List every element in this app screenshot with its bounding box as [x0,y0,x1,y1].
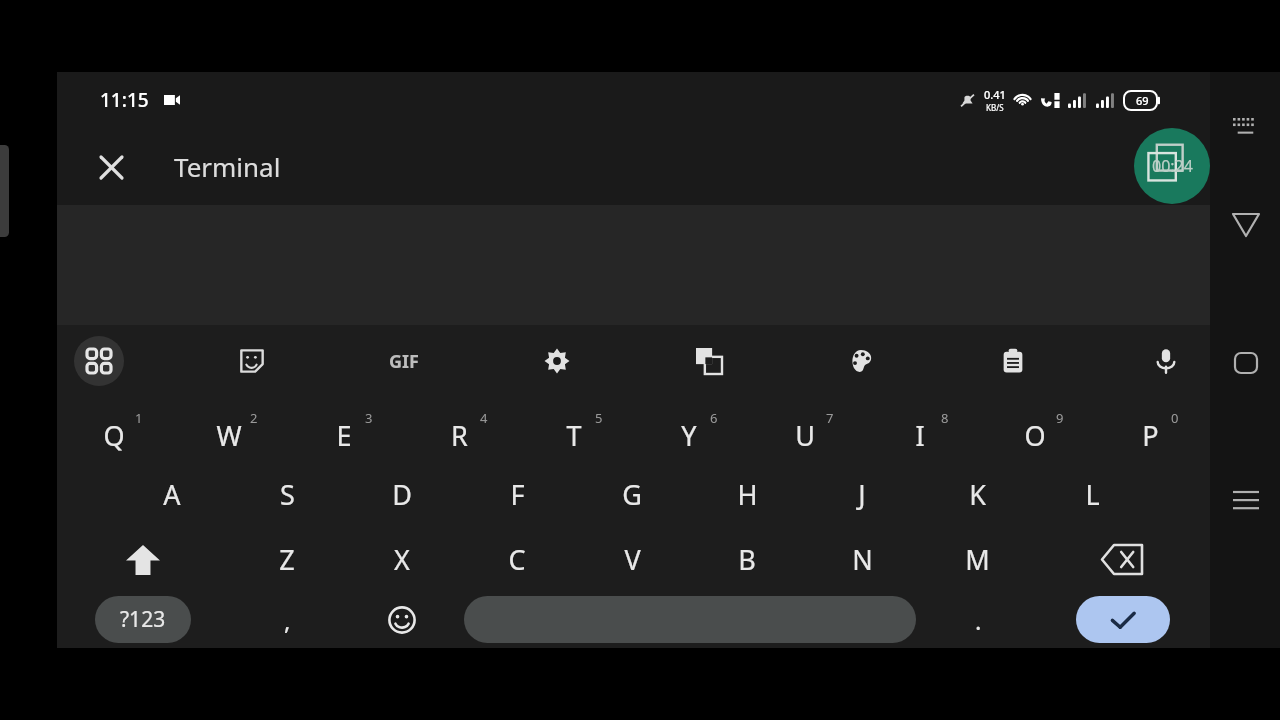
staticText: O [1024,417,1046,454]
button[interactable]: B [690,527,804,592]
button[interactable]: R [402,397,516,462]
staticText: M [965,541,990,578]
staticText: T [566,417,582,454]
staticText: 4 [480,409,488,427]
button[interactable]: Translate [684,336,734,386]
button[interactable]: Stickers [227,336,277,386]
staticText: K [969,476,986,513]
button[interactable]: Space [464,596,916,643]
button[interactable]: , [247,592,327,648]
staticText: S [280,476,295,513]
button[interactable]: I [863,397,977,462]
staticText: J [858,476,866,513]
staticText: 5 [595,409,603,427]
staticText: A [163,476,181,513]
button[interactable]: W [172,397,286,462]
button[interactable]: Z [230,527,344,592]
button[interactable]: H [690,462,804,527]
button[interactable]: T [517,397,631,462]
button[interactable]: J [805,462,919,527]
staticText: W [216,417,242,454]
button[interactable]: C [460,527,574,592]
staticText: 9 [1056,409,1064,427]
button[interactable]: P [1093,397,1207,462]
button[interactable]: Y [632,397,746,462]
button[interactable]: Hide keyboard [1220,100,1272,152]
button[interactable]: Recents [1220,475,1272,527]
staticText: B [738,541,756,578]
staticText: F [510,476,525,513]
staticText: 8 [941,409,949,427]
button[interactable]: Enter [1076,596,1170,643]
staticText: 1 [135,409,143,427]
button[interactable]: Backspace [1065,527,1179,592]
staticText: 6 [710,409,718,427]
button[interactable]: F [460,462,574,527]
staticText: V [624,541,641,578]
button[interactable]: Clipboard [988,336,1038,386]
staticText: U [795,417,815,454]
button[interactable]: E [287,397,401,462]
staticText: Y [681,417,697,454]
button[interactable]: ?123 [95,596,191,643]
staticText: GIF [389,349,419,374]
button[interactable]: V [575,527,689,592]
button[interactable]: Shift [86,527,200,592]
button[interactable]: Keyboard apps [74,336,124,386]
staticText: 3 [365,409,373,427]
button[interactable]: U [748,397,862,462]
staticText: 11:15 [100,87,149,113]
button[interactable]: Home [1220,337,1272,389]
button[interactable]: X [345,527,459,592]
staticText: L [1085,476,1100,513]
button[interactable]: D [345,462,459,527]
button[interactable]: N [805,527,919,592]
staticText: X [394,541,410,578]
staticText: D [392,476,412,513]
staticText: P [1142,417,1159,454]
staticText: N [852,541,873,578]
button[interactable]: L [1035,462,1149,527]
staticText: 7 [826,409,834,427]
staticText: , [284,604,291,637]
staticText: H [737,476,758,513]
button[interactable]: A [115,462,229,527]
button[interactable]: G [575,462,689,527]
button[interactable]: GIF [379,336,429,386]
staticText: G [622,476,642,513]
staticText: Terminal [174,149,281,184]
staticText: . [975,604,982,637]
button[interactable]: O [978,397,1092,462]
staticText: 69 [1136,93,1149,108]
button[interactable]: M [920,527,1034,592]
button[interactable]: Q [57,397,171,462]
staticText: ?123 [120,605,166,634]
staticText: 0 [1171,409,1179,427]
button[interactable]: Emoji [362,592,442,648]
button[interactable]: Theme [836,336,886,386]
staticText: 0.41 [984,87,1006,102]
button[interactable]: . [938,592,1018,648]
button[interactable]: Sessions [1134,128,1210,204]
staticText: Z [279,541,295,578]
staticText: Q [103,417,125,454]
button[interactable]: Close [85,141,137,193]
button[interactable]: Voice input [1141,336,1191,386]
staticText: C [508,541,526,578]
staticText: KB/S [986,102,1004,113]
button[interactable]: K [920,462,1034,527]
staticText: R [451,417,468,454]
staticText: 00:24 [1152,155,1193,177]
button[interactable]: Settings [532,336,582,386]
staticText: I [915,417,925,454]
button[interactable]: Back [1220,199,1272,251]
staticText: E [336,417,352,454]
button[interactable]: S [230,462,344,527]
staticText: 2 [250,409,258,427]
